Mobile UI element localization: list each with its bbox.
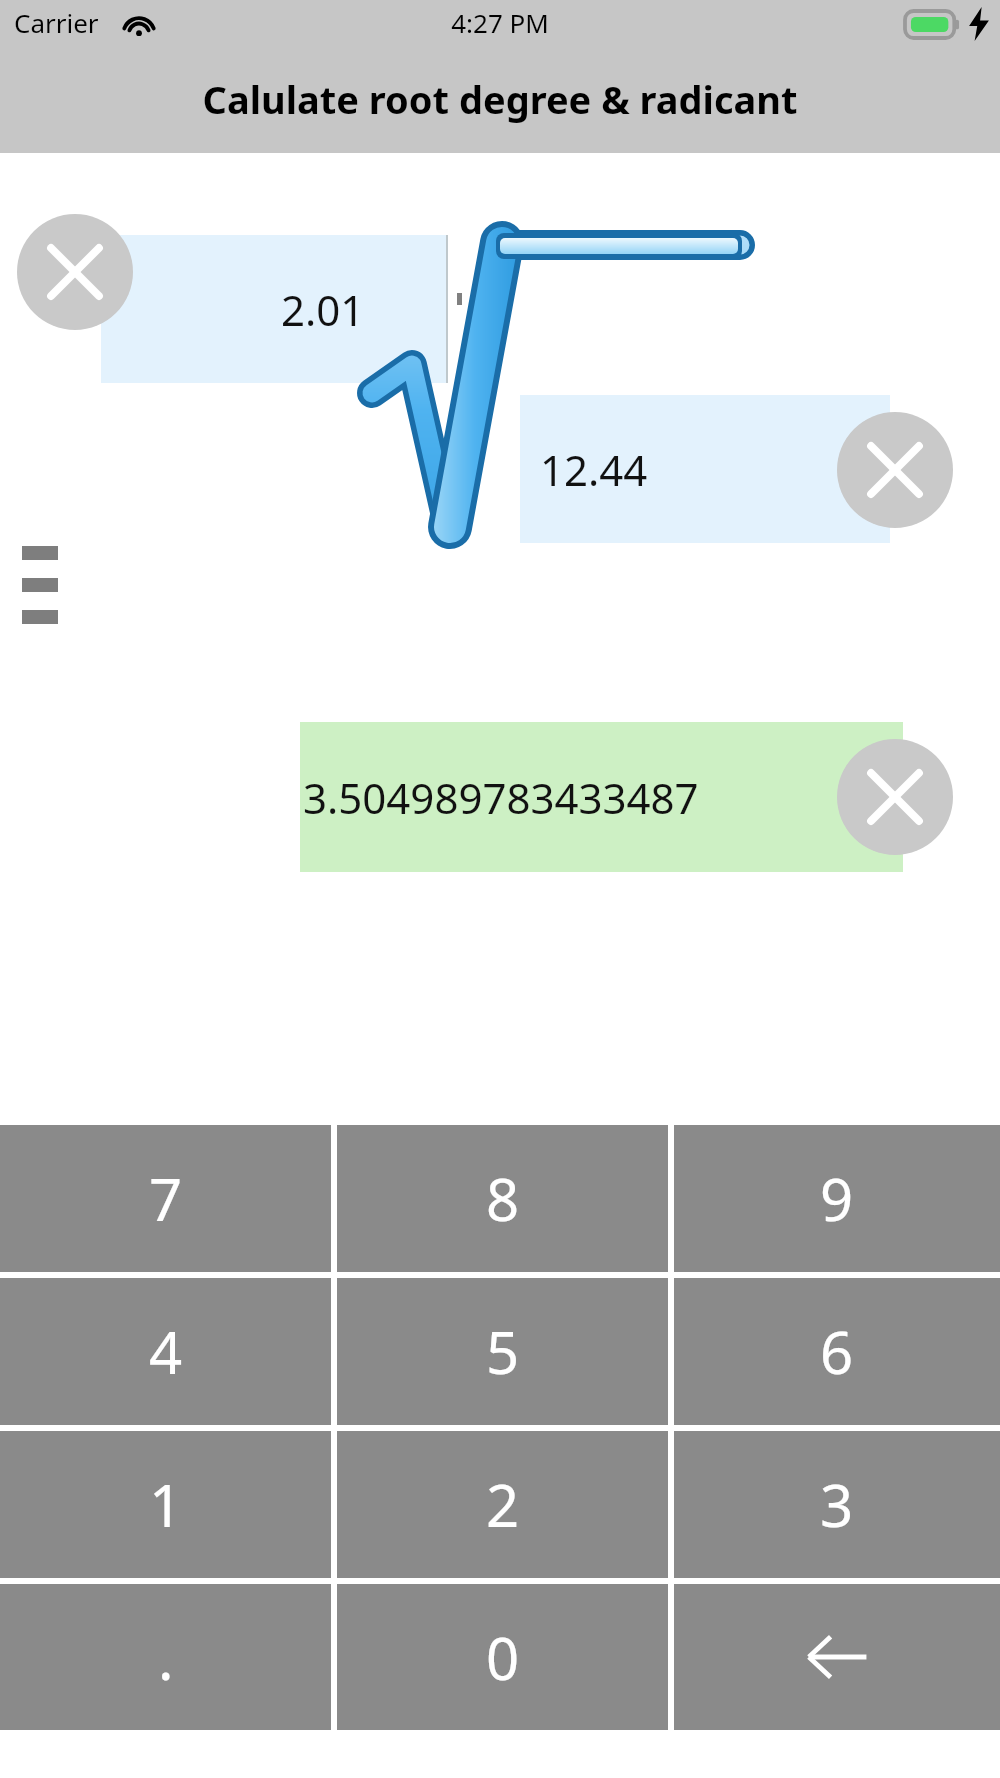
button[interactable]: . [0,1584,331,1730]
button[interactable]: 12.44 [520,395,890,543]
button[interactable]: 1 [0,1431,331,1578]
staticText: 4 [149,1312,183,1391]
staticText: 1 [149,1465,183,1544]
staticText: 12.44 [540,441,648,498]
button[interactable]: 2 [337,1431,668,1578]
button[interactable]: 3.504989783433487 [300,722,903,872]
staticText: 3.504989783433487 [303,769,699,826]
button[interactable]: 7 [0,1125,331,1272]
button[interactable]: Clear root degree [17,214,133,330]
staticText: Carrier [14,5,99,40]
button[interactable]: 0 [337,1584,668,1730]
button[interactable]: Clear result [837,739,953,855]
staticText: 2 [486,1465,520,1544]
button[interactable]: Clear radicant [837,412,953,528]
staticText: 4:27 PM [0,5,1000,40]
staticText: 8 [486,1159,520,1238]
button[interactable]: 3 [674,1431,1000,1578]
button[interactable]: Backspace [674,1584,1000,1730]
button[interactable]: 8 [337,1125,668,1272]
staticText: 0 [486,1618,520,1697]
button[interactable]: 2.01 [101,235,447,383]
staticText: . [158,1618,174,1697]
staticText: 9 [820,1159,854,1238]
button[interactable]: 9 [674,1125,1000,1272]
button[interactable]: 4 [0,1278,331,1425]
button[interactable]: 6 [674,1278,1000,1425]
staticText: 7 [149,1159,183,1238]
staticText: 2.01 [281,281,365,338]
staticText: 5 [486,1312,520,1391]
staticText: 6 [820,1312,854,1391]
button[interactable]: 5 [337,1278,668,1425]
staticText: 3 [820,1465,854,1544]
other: Backspace [805,1629,869,1685]
staticText: Calulate root degree & radicant [0,73,1000,125]
